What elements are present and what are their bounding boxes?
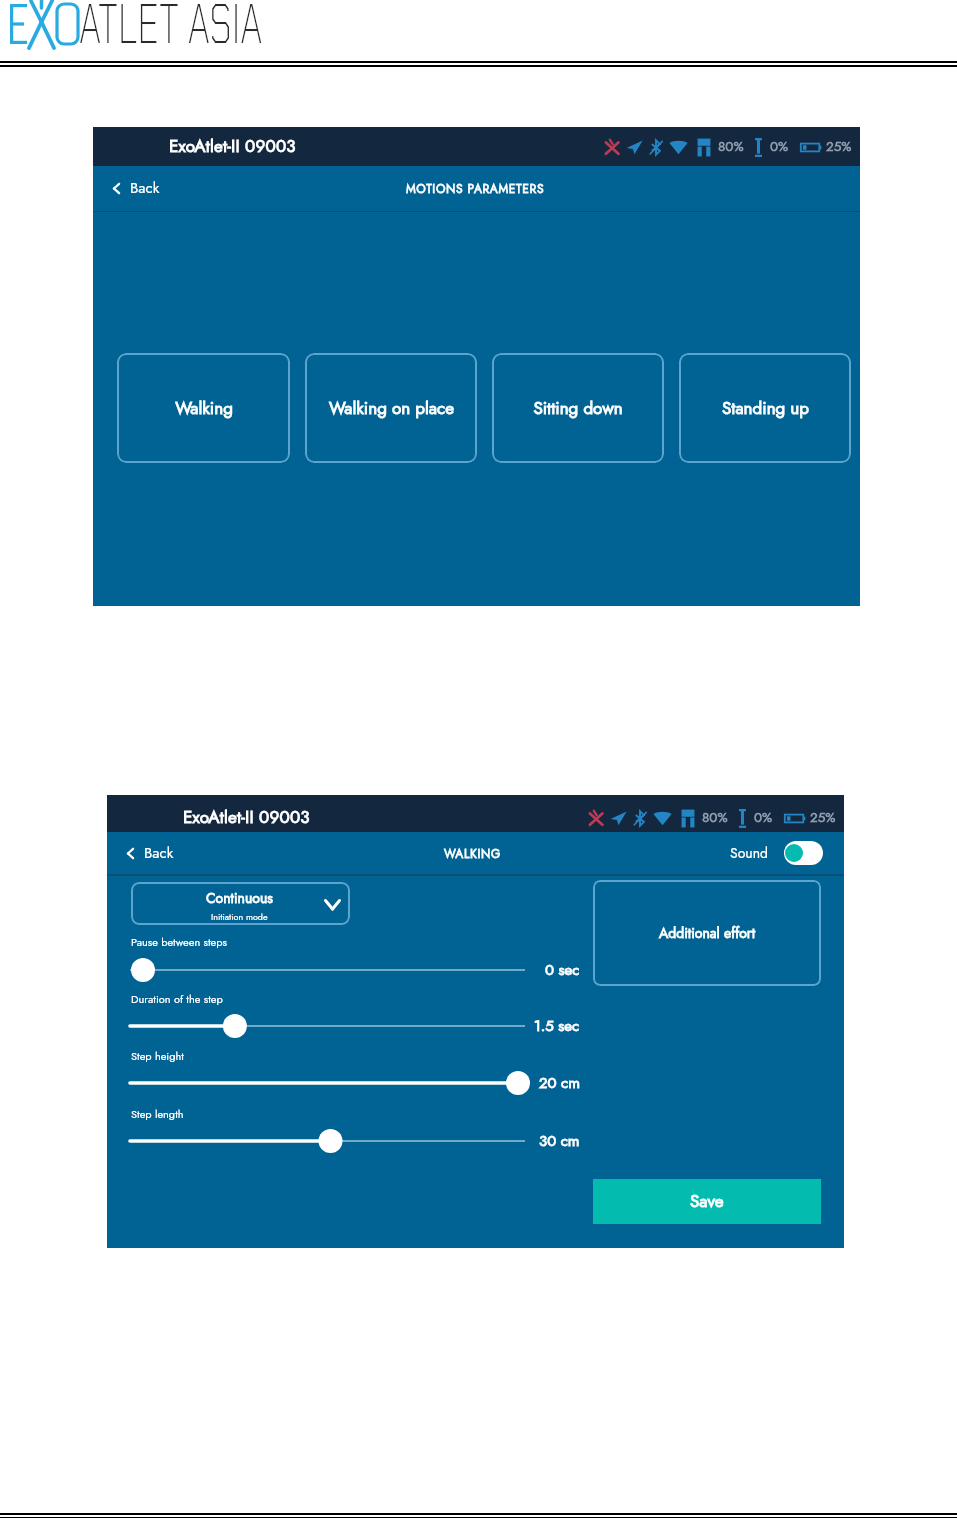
staticText: Walking (175, 396, 233, 421)
staticText: MOTIONS PARAMETERS (406, 180, 545, 197)
staticText: Save (690, 1189, 724, 1214)
other: Wi-Fi (653, 810, 672, 826)
other: Bluetooth (633, 810, 647, 827)
staticText: 25% (826, 137, 852, 157)
button[interactable]: Duration of the step (118, 1012, 538, 1040)
staticText: Pause between steps (131, 934, 227, 950)
button[interactable]: Walking on place (305, 353, 477, 463)
other: Disconnected (588, 810, 604, 826)
staticText: 0% (754, 808, 773, 828)
button[interactable]: Continuous (131, 882, 350, 925)
other: Location (626, 139, 643, 155)
staticText: 25% (810, 808, 836, 828)
button[interactable]: Step length (118, 1127, 538, 1155)
button[interactable]: Save (593, 1179, 821, 1224)
staticText: WALKING (444, 845, 501, 862)
button[interactable]: Back (93, 165, 174, 211)
staticText: 0% (770, 137, 789, 157)
staticText: Initiation mode (211, 910, 268, 923)
staticText: Step length (131, 1106, 184, 1122)
button[interactable]: Back (107, 832, 188, 874)
button[interactable]: Walking (117, 353, 290, 463)
button[interactable]: Sound (730, 841, 823, 865)
staticText: Back (144, 842, 174, 864)
other: Location (610, 810, 627, 826)
staticText: 80% (702, 808, 728, 828)
staticText: Sitting down (533, 396, 623, 421)
button[interactable]: Step height (118, 1069, 538, 1097)
other: Bluetooth (649, 139, 663, 156)
staticText: ATLET ASIA (79, 0, 263, 45)
staticText: 1.5 sec (534, 1015, 580, 1037)
staticText: Standing up (722, 396, 809, 421)
staticText: 20 cm (539, 1072, 580, 1094)
button[interactable]: Sitting down (492, 353, 664, 463)
button[interactable]: Additional effort (593, 880, 821, 986)
staticText: Duration of the step (131, 991, 223, 1007)
other: Wi-Fi (669, 139, 688, 155)
staticText: Back (130, 177, 160, 199)
staticText: 30 cm (539, 1130, 580, 1152)
staticText: 0 sec (545, 959, 580, 981)
button[interactable]: Standing up (679, 353, 851, 463)
staticText: Additional effort (659, 923, 756, 943)
staticText: ExoAtlet-II 09003 (169, 134, 296, 159)
other: Disconnected (604, 139, 620, 155)
staticText: ExoAtlet-II 09003 (183, 805, 310, 830)
staticText: Walking on place (329, 396, 454, 421)
button[interactable]: Pause between steps (118, 956, 538, 984)
staticText: Continuous (206, 888, 273, 908)
staticText: Sound (730, 843, 768, 863)
staticText: Step height (131, 1048, 184, 1064)
staticText: 80% (718, 137, 744, 157)
